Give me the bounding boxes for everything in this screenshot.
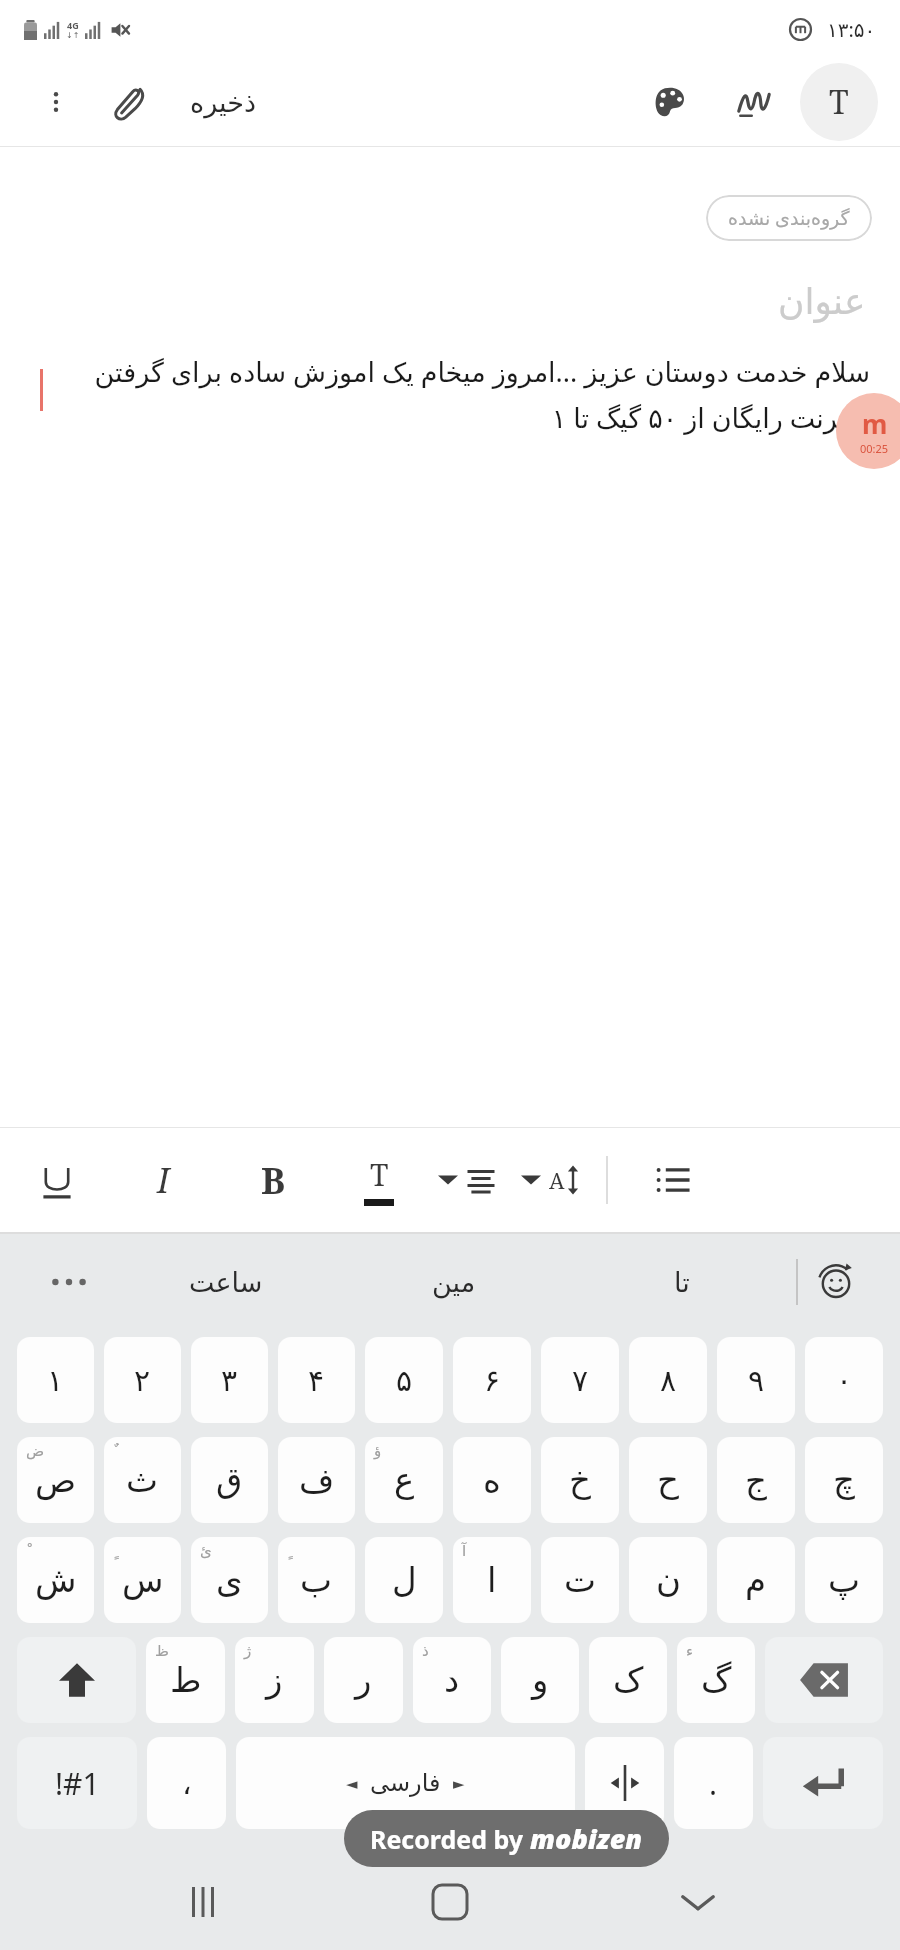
staticText: ت: [564, 1560, 597, 1600]
staticText: ق: [216, 1460, 243, 1500]
button[interactable]: ۲: [104, 1337, 181, 1423]
button[interactable]: ف: [278, 1437, 355, 1523]
button[interactable]: Bold: [242, 1141, 304, 1219]
button[interactable]: گ: [677, 1637, 755, 1723]
staticText: پ: [828, 1560, 861, 1600]
button[interactable]: ر: [324, 1637, 403, 1723]
staticText: ک: [613, 1660, 644, 1700]
button[interactable]: ۶: [453, 1337, 531, 1423]
button[interactable]: Hide keyboard: [653, 1857, 743, 1947]
button[interactable]: ص: [17, 1437, 94, 1523]
staticText: عنوان: [778, 281, 866, 323]
button[interactable]: ب: [278, 1537, 355, 1623]
staticText: مین: [432, 1267, 476, 1298]
button[interactable]: Cursor control: [585, 1737, 664, 1829]
button[interactable]: ع: [365, 1437, 443, 1523]
button[interactable]: Alignment: [436, 1141, 498, 1219]
button[interactable]: Draw: [726, 74, 782, 130]
button[interactable]: ت: [541, 1537, 619, 1623]
button[interactable]: ق: [191, 1437, 268, 1523]
staticText: ص: [35, 1460, 77, 1500]
button[interactable]: ۱: [17, 1337, 94, 1423]
staticText: ش: [35, 1560, 77, 1600]
button[interactable]: ط: [146, 1637, 225, 1723]
staticText: ۹: [748, 1363, 765, 1398]
button[interactable]: ۰: [805, 1337, 883, 1423]
staticText: ۱۳:۵۰: [827, 16, 876, 43]
staticText: ر: [355, 1660, 372, 1700]
staticText: د: [444, 1660, 460, 1700]
button[interactable]: ا: [453, 1537, 531, 1623]
staticText: ف: [299, 1460, 335, 1500]
button[interactable]: Enter: [763, 1737, 883, 1829]
button[interactable]: Italic: [132, 1141, 194, 1219]
button[interactable]: پ: [805, 1537, 883, 1623]
staticText: ذ: [422, 1642, 429, 1659]
button[interactable]: ز: [235, 1637, 314, 1723]
button[interactable]: ۴: [278, 1337, 355, 1423]
button[interactable]: ،: [147, 1737, 226, 1829]
button[interactable]: گروه‌بندی نشده: [706, 195, 872, 241]
staticText: و: [532, 1660, 549, 1700]
button[interactable]: ۸: [629, 1337, 707, 1423]
staticText: ض: [26, 1442, 45, 1459]
button[interactable]: تا: [568, 1234, 796, 1330]
button[interactable]: Recents: [158, 1857, 248, 1947]
staticText: سلام خدمت دوستان عزیز ...امروز میخام یک …: [50, 353, 870, 436]
button[interactable]: Home: [405, 1857, 495, 1947]
button[interactable]: مین: [340, 1234, 568, 1330]
staticText: mobizen: [530, 1820, 643, 1857]
button[interactable]: ۳: [191, 1337, 268, 1423]
button[interactable]: س: [104, 1537, 181, 1623]
button[interactable]: Font size: [520, 1141, 582, 1219]
button[interactable]: چ: [805, 1437, 883, 1523]
button[interactable]: ۵: [365, 1337, 443, 1423]
staticText: T: [370, 1154, 389, 1195]
staticText: 4G: [67, 19, 79, 31]
button[interactable]: ۷: [541, 1337, 619, 1423]
staticText: ۵: [396, 1363, 413, 1398]
button[interactable]: ساعت: [112, 1234, 340, 1330]
staticText: ا: [487, 1560, 497, 1600]
button[interactable]: Recording: [836, 393, 900, 469]
button[interactable]: ش: [17, 1537, 94, 1623]
button[interactable]: .: [674, 1737, 753, 1829]
button[interactable]: More options: [30, 76, 82, 128]
button[interactable]: More suggestions: [26, 1234, 112, 1330]
button[interactable]: Shift: [17, 1637, 136, 1723]
staticText: A: [549, 1165, 565, 1195]
button[interactable]: ن: [629, 1537, 707, 1623]
button[interactable]: ح: [629, 1437, 707, 1523]
button[interactable]: و: [501, 1637, 579, 1723]
staticText: ۳: [221, 1363, 238, 1398]
button[interactable]: خ: [541, 1437, 619, 1523]
button[interactable]: ی: [191, 1537, 268, 1623]
staticText: ئ: [200, 1542, 212, 1559]
button[interactable]: ۹: [717, 1337, 795, 1423]
button[interactable]: ل: [365, 1537, 443, 1623]
button[interactable]: ک: [589, 1637, 667, 1723]
button[interactable]: Backspace: [765, 1637, 883, 1723]
button[interactable]: Bullet list: [642, 1141, 704, 1219]
button[interactable]: ه: [453, 1437, 531, 1523]
staticText: ساعت: [189, 1267, 263, 1298]
button[interactable]: Text mode: [800, 63, 878, 141]
button[interactable]: ث: [104, 1437, 181, 1523]
button[interactable]: ذخیره: [182, 81, 264, 124]
button[interactable]: Emoji: [798, 1234, 874, 1330]
button[interactable]: Space: [236, 1737, 575, 1829]
staticText: ی: [216, 1560, 243, 1600]
button[interactable]: د: [413, 1637, 491, 1723]
button[interactable]: ج: [717, 1437, 795, 1523]
button[interactable]: Symbols: [17, 1737, 137, 1829]
staticText: ،: [182, 1766, 192, 1801]
button[interactable]: Attach: [102, 74, 158, 130]
button[interactable]: Color palette: [642, 74, 698, 130]
staticText: ه: [483, 1460, 501, 1500]
staticText: m: [862, 406, 888, 441]
button[interactable]: Underline: [26, 1141, 88, 1219]
button[interactable]: Text color: [348, 1141, 410, 1219]
button[interactable]: م: [717, 1537, 795, 1623]
staticText: ء: [686, 1642, 694, 1659]
staticText: گروه‌بندی نشده: [728, 205, 850, 231]
